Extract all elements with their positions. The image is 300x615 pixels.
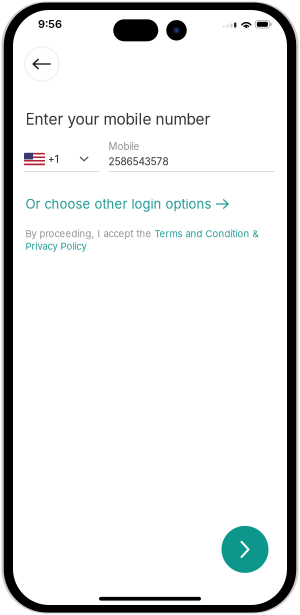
button[interactable]: Terms and Condition &: [155, 228, 259, 239]
staticText: Privacy Policy: [26, 240, 87, 252]
staticText: 2586543578: [108, 155, 168, 168]
staticText: Mobile: [108, 141, 139, 152]
button[interactable]: Back: [25, 47, 59, 81]
button[interactable]: Country code +1: [24, 152, 100, 172]
staticText: Or choose other login options: [26, 196, 212, 212]
staticText: By proceeding, I accept the: [26, 228, 155, 239]
button[interactable]: Continue: [221, 526, 268, 573]
staticText: Enter your mobile number: [26, 110, 211, 129]
staticText: 9:56: [38, 17, 62, 31]
button[interactable]: Or choose other login options: [13, 196, 229, 212]
staticText: +1: [47, 152, 58, 166]
staticText: Terms and Condition &: [155, 228, 259, 239]
button[interactable]: Privacy Policy: [26, 240, 87, 252]
